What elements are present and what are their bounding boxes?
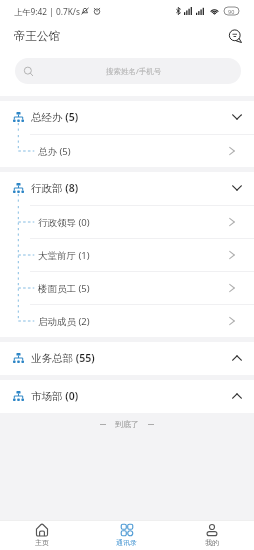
staticText: 帝王公馆 bbox=[14, 29, 60, 43]
staticText: 启动成员 (2) bbox=[38, 315, 90, 328]
button[interactable]: 行政领导 (0) bbox=[0, 206, 254, 238]
staticText: 90 bbox=[228, 8, 235, 15]
button[interactable]: 楼面员工 (5) bbox=[0, 272, 254, 304]
button[interactable]: 大堂前厅 (1) bbox=[0, 239, 254, 271]
staticText: 主页 bbox=[35, 538, 49, 547]
button[interactable]: 总经办 (5) bbox=[0, 101, 254, 134]
staticText: 行政部 (8) bbox=[31, 181, 79, 195]
button[interactable]: 总办 (5) bbox=[0, 135, 254, 167]
staticText: 业务总部 (55) bbox=[31, 351, 95, 365]
staticText: 行政领导 (0) bbox=[38, 216, 90, 229]
staticText: 大堂前厅 (1) bbox=[38, 249, 90, 262]
staticText: 到底了 bbox=[115, 419, 139, 429]
button[interactable]: 业务总部 (55) bbox=[0, 342, 254, 375]
button[interactable]: 我的 bbox=[169, 521, 254, 550]
button[interactable]: 行政部 (8) bbox=[0, 172, 254, 205]
staticText: 总办 (5) bbox=[38, 145, 71, 158]
button[interactable]: 启动成员 (2) bbox=[0, 305, 254, 337]
staticText: 总经办 (5) bbox=[31, 110, 79, 124]
button[interactable]: 搜索姓名/手机号 bbox=[15, 58, 241, 84]
staticText: 上午9:42 | 0.7K/s bbox=[14, 6, 80, 17]
staticText: 通讯录 bbox=[116, 538, 137, 547]
button[interactable]: Messages bbox=[225, 26, 245, 46]
button[interactable]: 市场部 (0) bbox=[0, 380, 254, 413]
button[interactable]: 通讯录 bbox=[84, 521, 169, 550]
button[interactable]: 主页 bbox=[0, 521, 84, 550]
staticText: 搜索姓名/手机号 bbox=[106, 66, 162, 76]
staticText: 市场部 (0) bbox=[31, 389, 79, 403]
staticText: 楼面员工 (5) bbox=[38, 282, 90, 295]
staticText: 我的 bbox=[205, 538, 219, 547]
